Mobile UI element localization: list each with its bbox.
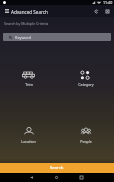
- button[interactable]: Settings: [103, 7, 112, 16]
- button[interactable]: Trim: [0, 69, 57, 87]
- button[interactable]: Keyword: [3, 33, 111, 41]
- button[interactable]: Category: [57, 69, 114, 87]
- staticText: Category: [78, 82, 94, 87]
- staticText: Advanced Search: [11, 9, 48, 15]
- button[interactable]: Menu: [3, 6, 10, 16]
- staticText: Search by Multiple Criteria: [4, 21, 49, 26]
- button[interactable]: Back: [27, 173, 36, 182]
- staticText: Trim: [25, 82, 33, 87]
- button[interactable]: Search: [0, 163, 114, 173]
- button[interactable]: Saved searches: [92, 7, 101, 16]
- staticText: Location: [21, 139, 36, 144]
- button[interactable]: Location: [0, 126, 57, 144]
- button[interactable]: People: [57, 126, 114, 144]
- staticText: People: [80, 139, 92, 144]
- staticText: Search: [50, 165, 64, 171]
- button[interactable]: Home: [52, 173, 61, 182]
- staticText: 11:40: [103, 0, 113, 5]
- button[interactable]: Recent apps: [77, 173, 86, 182]
- staticText: Keyword: [15, 35, 31, 40]
